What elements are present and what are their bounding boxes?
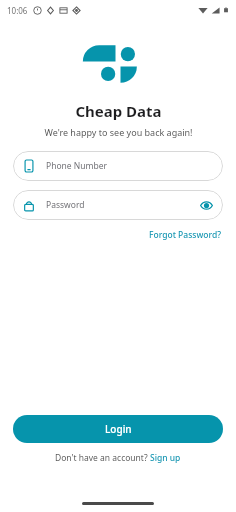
staticText: Cheap Data xyxy=(75,101,162,121)
button[interactable]: Forgot Password? xyxy=(147,227,223,243)
staticText: Phone Number xyxy=(46,160,107,172)
button[interactable]: Sign up xyxy=(150,452,181,464)
button[interactable]: Login xyxy=(13,415,223,443)
other: Phone xyxy=(22,159,36,173)
other: Password xyxy=(22,198,36,212)
staticText: 10:06 xyxy=(7,5,28,16)
button[interactable]: Toggle password visibility xyxy=(198,197,214,213)
button[interactable]: Password xyxy=(13,190,223,220)
staticText: Login xyxy=(105,422,132,436)
staticText: We're happy to see you back again! xyxy=(44,126,193,138)
staticText: Forgot Password? xyxy=(149,229,221,241)
staticText: Sign up xyxy=(150,452,181,464)
staticText: Don't have an account? xyxy=(55,452,150,464)
staticText: Password xyxy=(46,199,85,211)
button[interactable]: Phone xyxy=(13,151,223,181)
